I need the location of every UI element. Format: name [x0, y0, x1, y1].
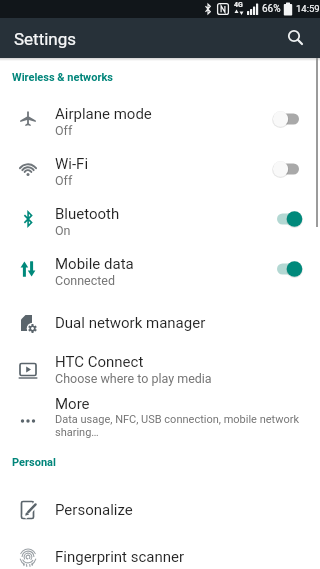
staticText: Off	[55, 123, 73, 138]
staticText: 66%	[262, 3, 281, 15]
button[interactable]: Fingerprint scanner	[0, 532, 320, 569]
button[interactable]: Mobile data	[0, 244, 320, 294]
staticText: HTC Connect	[55, 353, 144, 371]
button[interactable]	[286, 28, 306, 48]
staticText: Off	[55, 173, 73, 188]
staticText: Personal	[12, 456, 56, 469]
staticText: Wireless & networks	[12, 71, 113, 84]
staticText: Fingerprint scanner	[55, 548, 185, 566]
staticText: Connected	[55, 273, 116, 288]
button[interactable]: More	[0, 394, 320, 444]
staticText: 14:59	[296, 3, 320, 14]
button[interactable]: HTC Connect	[0, 342, 320, 392]
staticText: Personalize	[55, 501, 133, 519]
staticText: Airplane mode	[55, 105, 152, 123]
staticText: sharing…	[55, 426, 99, 439]
button[interactable]: Airplane mode	[0, 94, 320, 144]
button[interactable]: Bluetooth	[0, 194, 320, 244]
staticText: Choose where to play media	[55, 371, 212, 386]
button[interactable]: Dual network manager	[0, 298, 320, 348]
staticText: Bluetooth	[55, 205, 120, 223]
staticText: Wi-Fi	[55, 155, 89, 173]
staticText: On	[55, 223, 71, 238]
staticText: More	[55, 395, 90, 413]
staticText: 4G	[234, 1, 243, 9]
staticText: Data usage, NFC, USB connection, mobile …	[55, 413, 300, 426]
staticText: Settings	[14, 29, 77, 49]
button[interactable]: Personalize	[0, 485, 320, 535]
button[interactable]: Wi-Fi	[0, 144, 320, 194]
staticText: Mobile data	[55, 255, 134, 273]
staticText: Dual network manager	[55, 314, 206, 332]
